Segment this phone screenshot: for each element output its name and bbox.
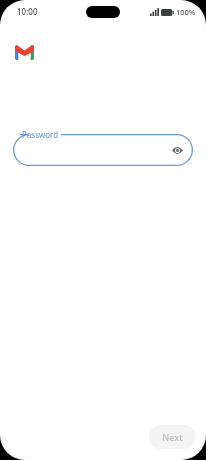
button[interactable]: Show password: [166, 139, 188, 161]
other: Gmail: [15, 45, 34, 60]
button[interactable]: Next: [149, 425, 196, 449]
staticText: 100%: [176, 7, 196, 17]
staticText: 10:00: [17, 6, 38, 17]
staticText: Password: [22, 129, 59, 140]
button[interactable]: Password: [13, 134, 193, 166]
staticText: Next: [162, 431, 183, 443]
